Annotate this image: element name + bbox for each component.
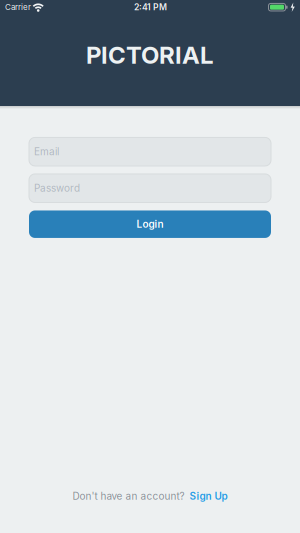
- staticText: Carrier: [5, 2, 31, 12]
- button[interactable]: Email: [29, 137, 271, 166]
- button[interactable]: Login: [29, 210, 271, 238]
- staticText: Sign Up: [189, 490, 227, 502]
- button[interactable]: Password: [29, 174, 271, 202]
- button[interactable]: Sign Up: [189, 490, 227, 502]
- staticText: Login: [136, 218, 163, 230]
- staticText: 2:41 PM: [134, 2, 167, 12]
- staticText: Password: [34, 182, 80, 194]
- staticText: Don't have an account?: [72, 490, 184, 502]
- staticText: Email: [34, 146, 59, 158]
- staticText: PICTORIAL: [86, 40, 214, 69]
